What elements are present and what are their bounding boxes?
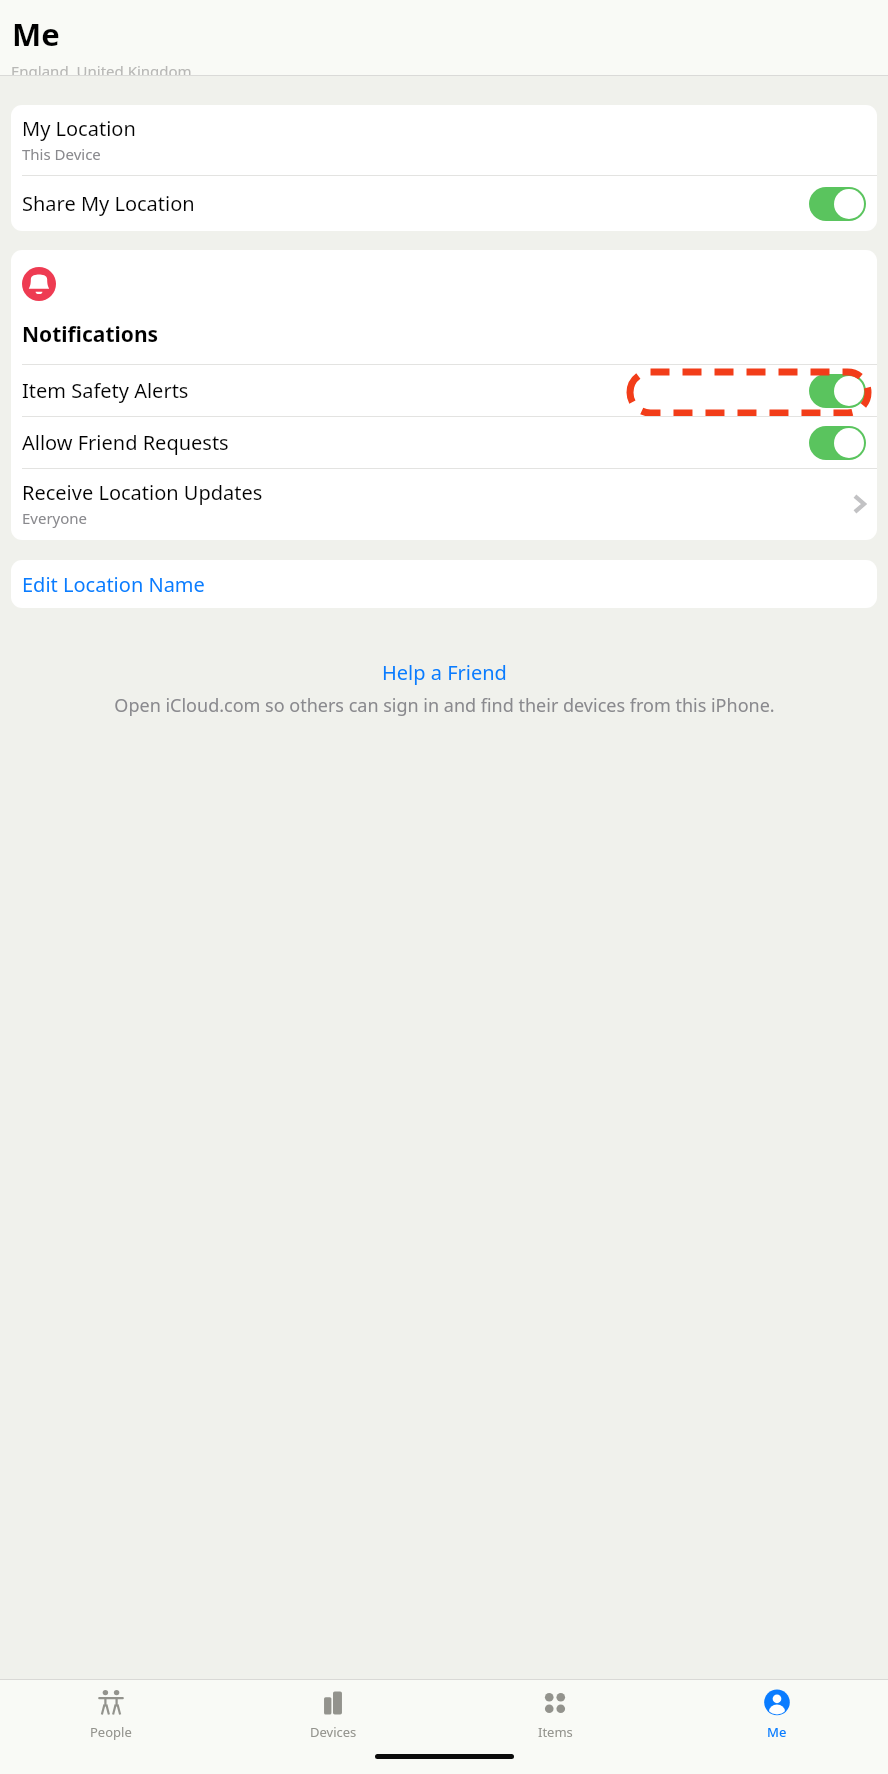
button[interactable]: Share My Location [11,176,877,231]
button[interactable]: Devices [222,1680,444,1742]
button[interactable]: Receive Location Updates [11,469,877,540]
button[interactable]: Me [666,1680,888,1742]
button[interactable]: Edit Location Name [11,560,877,608]
staticText: People [90,1723,132,1741]
staticText: Edit Location Name [22,571,205,598]
staticText: Everyone [22,508,88,528]
button[interactable]: Toggle on [809,374,866,408]
staticText: This Device [22,144,101,164]
other: Notifications [22,267,56,301]
button[interactable]: Toggle on [809,187,866,221]
staticText: England, United Kingdom [11,61,192,75]
staticText: Notifications [22,320,159,349]
button[interactable]: Toggle on [809,426,866,460]
staticText: Open iCloud.com so others can sign in an… [114,693,775,718]
staticText: Allow Friend Requests [22,429,229,456]
staticText: Receive Location Updates [22,479,263,506]
button[interactable]: Allow Friend Requests [11,417,877,468]
button[interactable]: My Location [11,105,877,175]
staticText: Items [538,1723,573,1741]
staticText: Share My Location [22,190,195,217]
staticText: Me [767,1723,787,1741]
button[interactable]: People [0,1680,222,1742]
button[interactable]: Help a Friend [382,659,507,686]
staticText: Devices [310,1723,357,1741]
button[interactable]: Item Safety Alerts [11,365,877,416]
staticText: Me [12,13,60,55]
staticText: My Location [22,115,136,142]
button[interactable]: Items [444,1680,666,1742]
staticText: Item Safety Alerts [22,377,189,404]
